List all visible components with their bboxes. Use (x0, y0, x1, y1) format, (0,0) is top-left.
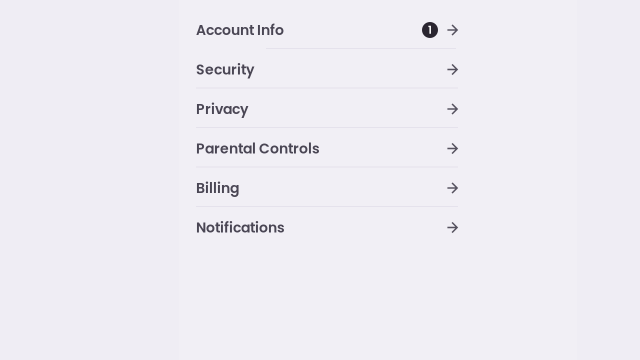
button[interactable]: Billing (196, 176, 458, 215)
button[interactable]: Account Info (196, 18, 458, 57)
staticText: Account Info (196, 20, 284, 40)
staticText: Security (196, 60, 254, 79)
staticText: Parental Controls (196, 139, 320, 158)
staticText: 1 (428, 22, 432, 37)
staticText: Billing (196, 178, 239, 198)
button[interactable]: Privacy (196, 97, 458, 136)
button[interactable]: Parental Controls (196, 136, 458, 176)
button[interactable]: Notifications (196, 215, 458, 255)
staticText: Privacy (196, 99, 248, 119)
button[interactable]: Security (196, 57, 458, 97)
staticText: Notifications (196, 218, 285, 237)
